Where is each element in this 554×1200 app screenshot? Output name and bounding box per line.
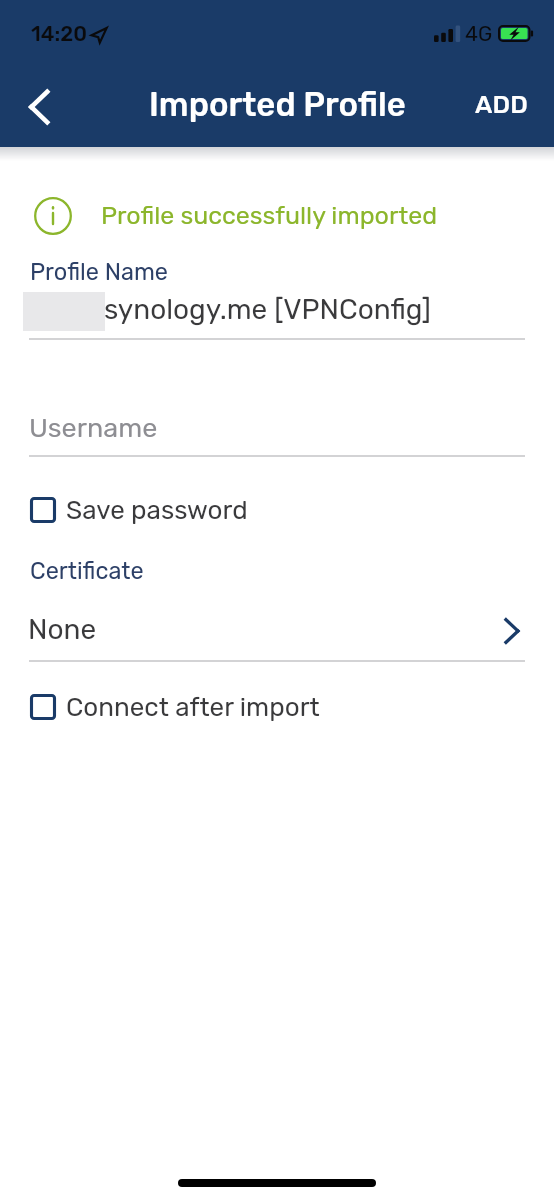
button[interactable]: Username field: [29, 406, 525, 456]
button[interactable]: Back: [13, 81, 65, 133]
staticText: Imported Profile: [149, 85, 406, 124]
staticText: Save password: [66, 495, 248, 526]
button[interactable]: None: [28, 601, 526, 661]
button[interactable]: Connect after import: [30, 686, 320, 728]
staticText: synology.me [VPNConfig]: [104, 293, 432, 326]
staticText: 14:20: [31, 21, 87, 46]
button[interactable]: Save password: [30, 489, 248, 531]
staticText: Profile successfully imported: [101, 201, 438, 231]
staticText: 4G: [465, 21, 493, 46]
staticText: ADD: [475, 90, 529, 120]
staticText: Connect after import: [66, 692, 320, 723]
staticText: Profile Name: [30, 258, 168, 286]
staticText: Username: [29, 412, 158, 444]
staticText: None: [28, 613, 97, 646]
staticText: Certificate: [30, 557, 144, 585]
button[interactable]: Profile Name field: [29, 288, 525, 340]
button[interactable]: ADD: [459, 61, 545, 148]
